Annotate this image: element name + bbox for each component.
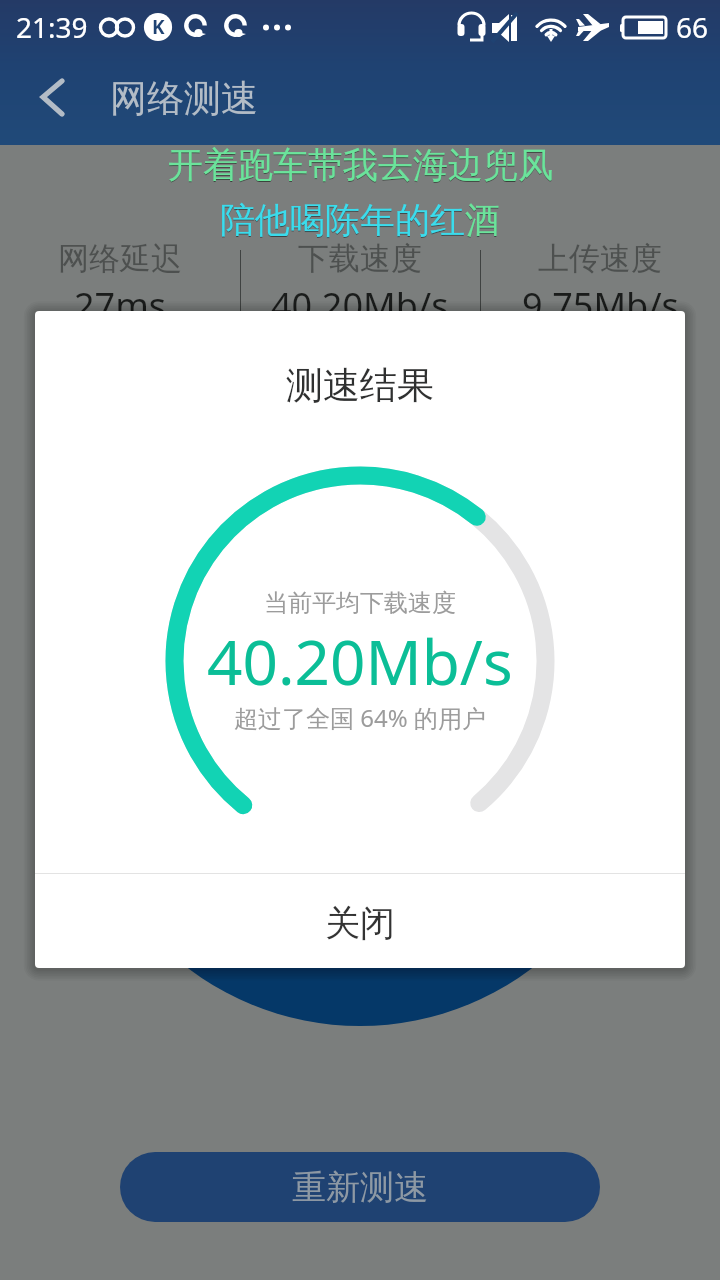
staticText: K [152, 14, 165, 40]
staticText: 超过了全国 64% 的用户 [234, 701, 486, 734]
button[interactable]: Back [14, 62, 86, 134]
staticText: 陪他喝陈年的红酒 [220, 199, 500, 243]
staticText: 40.20Mb/s [207, 619, 513, 703]
staticText: 66 [676, 8, 709, 46]
staticText: 关闭 [325, 901, 395, 945]
staticText: 9.75Mb/s [522, 281, 679, 330]
staticText: 上传速度 [538, 239, 662, 278]
staticText: 重新测速 [292, 1166, 428, 1209]
staticText: 网络测速 [110, 75, 258, 122]
staticText: 下载速度 [298, 239, 422, 278]
staticText: 40.20Mb/s [271, 281, 449, 330]
button[interactable]: 重新测速 [120, 1152, 600, 1222]
staticText: 网络延迟 [58, 239, 182, 278]
staticText: 开着跑车带我去海边兜风 [168, 143, 553, 187]
staticText: 27ms [74, 281, 167, 330]
staticText: 陪他喝陈年的红酒 [220, 198, 500, 242]
staticText: 当前平均下载速度 [264, 588, 456, 618]
staticText: 测速结果 [286, 362, 434, 409]
staticText: 开着跑车带我去海边兜风 [168, 144, 553, 188]
staticText: 21:39 [16, 8, 88, 46]
button[interactable]: 关闭 [35, 876, 685, 968]
